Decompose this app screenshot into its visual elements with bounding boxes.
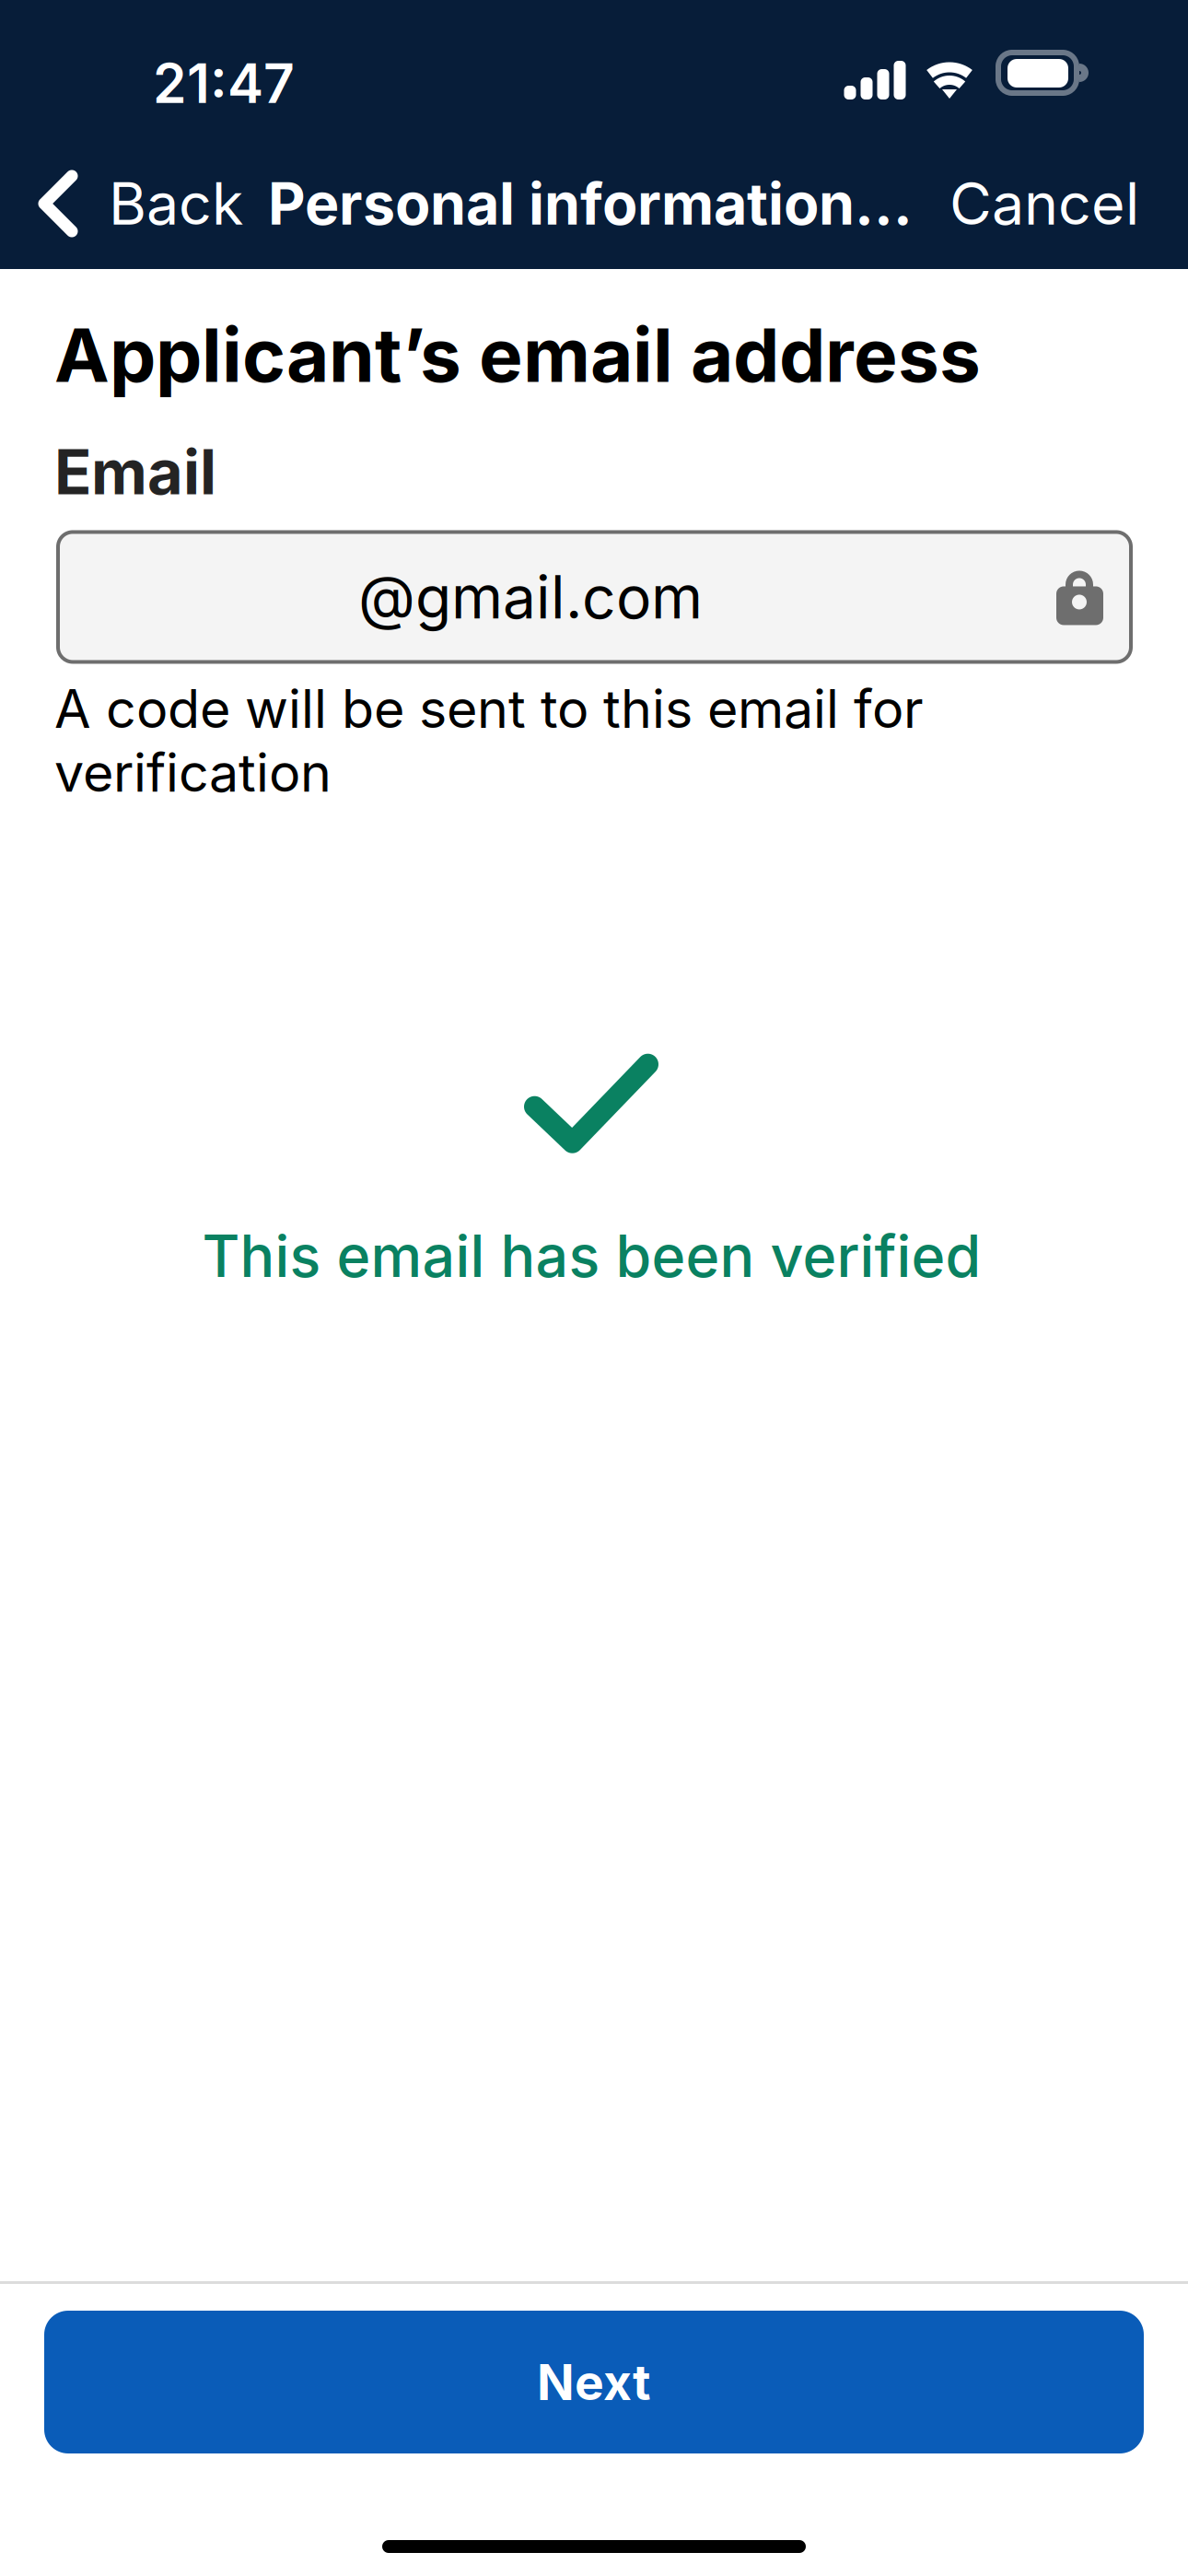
staticText: This email has been verified bbox=[202, 1221, 981, 1291]
staticText: Applicant’s email address bbox=[54, 310, 981, 400]
staticText: Next bbox=[537, 2352, 651, 2412]
staticText: Email bbox=[54, 435, 216, 509]
staticText: A code will be sent to this email for ve… bbox=[54, 677, 924, 804]
button[interactable]: Next bbox=[44, 2311, 1144, 2453]
button[interactable]: Back bbox=[0, 138, 255, 269]
staticText: Back bbox=[109, 169, 243, 239]
staticText: @gmail.com bbox=[358, 561, 703, 633]
staticText: 21:47 bbox=[153, 51, 295, 116]
button[interactable]: Cancel bbox=[0, 138, 1157, 269]
staticText: Personal information… bbox=[268, 169, 913, 239]
staticText: Cancel bbox=[949, 169, 1139, 239]
